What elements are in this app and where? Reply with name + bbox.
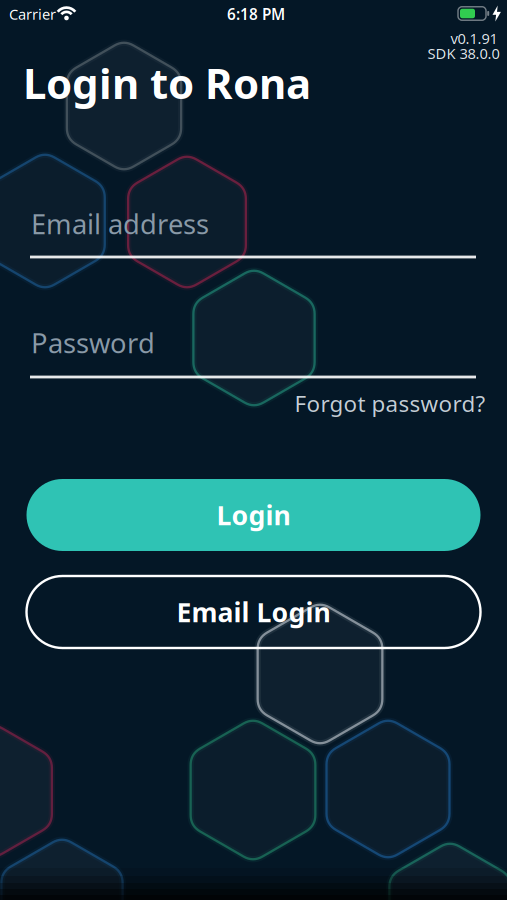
button[interactable]: Forgot password? <box>294 388 485 418</box>
staticText: 6:18 PM <box>227 4 285 24</box>
staticText: Login to Rona <box>23 54 311 111</box>
button[interactable]: Email address <box>30 205 476 258</box>
button[interactable]: Login <box>26 479 480 551</box>
staticText: Forgot password? <box>294 388 485 418</box>
staticText: Carrier <box>9 4 56 24</box>
staticText: Password <box>31 324 155 361</box>
button[interactable]: Email Login <box>26 576 480 648</box>
staticText: Email address <box>31 205 209 242</box>
button[interactable]: Password <box>30 324 476 378</box>
staticText: v0.1.91 <box>450 28 497 48</box>
staticText: Email Login <box>176 594 330 630</box>
staticText: Login <box>216 497 290 533</box>
staticText: SDK 38.0.0 <box>427 43 499 63</box>
